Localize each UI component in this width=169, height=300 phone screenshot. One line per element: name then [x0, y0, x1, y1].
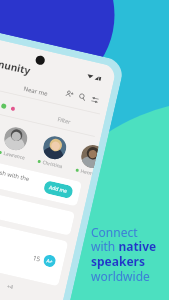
button[interactable]: Near me [20, 82, 51, 101]
staticText: Lawrence [3, 150, 26, 162]
staticText: Filter [57, 115, 72, 125]
staticText: Hermann [80, 168, 93, 177]
button[interactable]: Lawrence [0, 124, 31, 162]
button[interactable]: Mas de 200 palabras que has aprendido en [0, 209, 68, 286]
button[interactable]: Help you learn English with the best lor… [0, 150, 82, 207]
button[interactable]: Spanish [10, 106, 15, 111]
button[interactable]: Add friend [65, 89, 74, 99]
staticText: Mas de 200 palabras que has aprendido en [0, 223, 36, 268]
button[interactable]: Community [0, 51, 32, 78]
button[interactable]: Filter [57, 115, 72, 125]
button[interactable]: Filter [90, 95, 100, 105]
button[interactable]: English [1, 103, 7, 109]
button[interactable]: Level [42, 254, 57, 268]
staticText: Near me [23, 85, 49, 98]
staticText: A+ [46, 257, 54, 266]
button[interactable]: Search [77, 92, 87, 102]
staticText: 15 [32, 253, 42, 264]
button[interactable]: Add me [43, 180, 74, 199]
staticText: Connect with native speakers worldwide [91, 224, 157, 285]
button[interactable]: Christina [37, 133, 69, 170]
staticText: Community [0, 51, 32, 78]
button[interactable]: Hermann [75, 142, 99, 177]
staticText: Add me [48, 184, 68, 195]
staticText: Christina [42, 159, 64, 170]
staticText: Help you learn English with the best lor… [0, 156, 46, 195]
staticText: +4 [6, 282, 15, 290]
button[interactable]: Mariana [0, 180, 75, 236]
